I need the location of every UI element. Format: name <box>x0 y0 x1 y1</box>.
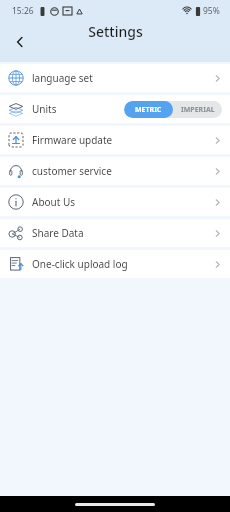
button[interactable]: METRIC <box>124 101 173 118</box>
staticText: Settings <box>88 22 143 41</box>
staticText: METRIC <box>135 105 162 115</box>
staticText: Share Data <box>32 226 84 240</box>
button[interactable]: Share Data <box>0 219 230 247</box>
button[interactable]: IMPERIAL <box>173 101 222 118</box>
button[interactable]: Back <box>5 27 35 57</box>
staticText: Units <box>32 102 57 116</box>
button[interactable]: customer service <box>0 157 230 185</box>
button[interactable]: One-click upload log <box>0 250 230 278</box>
staticText: customer service <box>32 164 112 178</box>
staticText: IMPERIAL <box>181 105 215 115</box>
staticText: One-click upload log <box>32 257 128 271</box>
staticText: 95% <box>203 5 220 17</box>
staticText: About Us <box>32 195 76 209</box>
button[interactable]: Firmware update <box>0 126 230 154</box>
staticText: 15:26 <box>12 5 34 17</box>
button[interactable]: About Us <box>0 188 230 216</box>
staticText: Firmware update <box>32 133 113 147</box>
button[interactable]: language set <box>0 64 230 92</box>
staticText: language set <box>32 71 93 85</box>
